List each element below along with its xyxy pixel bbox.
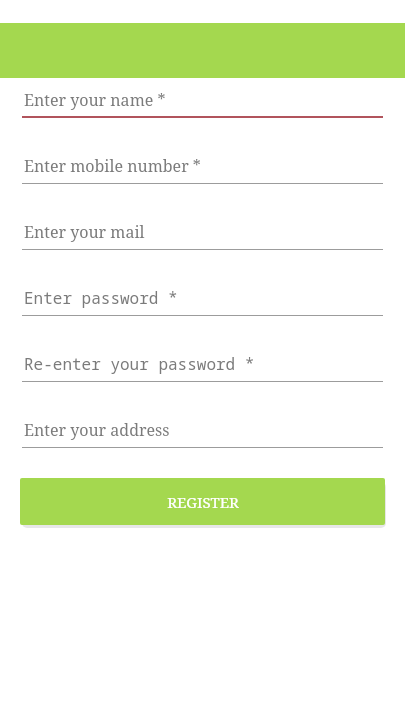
button[interactable]: Enter your address bbox=[22, 403, 383, 448]
staticText: Enter mobile number * bbox=[24, 155, 201, 177]
staticText: Enter password * bbox=[24, 287, 178, 309]
button[interactable]: Register bbox=[20, 478, 385, 525]
staticText: Enter your mail bbox=[24, 221, 145, 243]
button[interactable]: Enter mobile number * bbox=[22, 139, 383, 184]
button[interactable]: Re-enter your password * bbox=[22, 337, 383, 382]
staticText: Enter your name * bbox=[24, 89, 166, 111]
staticText: Enter your address bbox=[24, 419, 170, 441]
staticText: Re-enter your password * bbox=[24, 353, 255, 375]
button[interactable]: Enter your name * bbox=[22, 73, 383, 118]
button[interactable]: Enter your mail bbox=[22, 205, 383, 250]
button[interactable]: Enter password * bbox=[22, 271, 383, 316]
staticText: REGISTER bbox=[167, 492, 239, 512]
